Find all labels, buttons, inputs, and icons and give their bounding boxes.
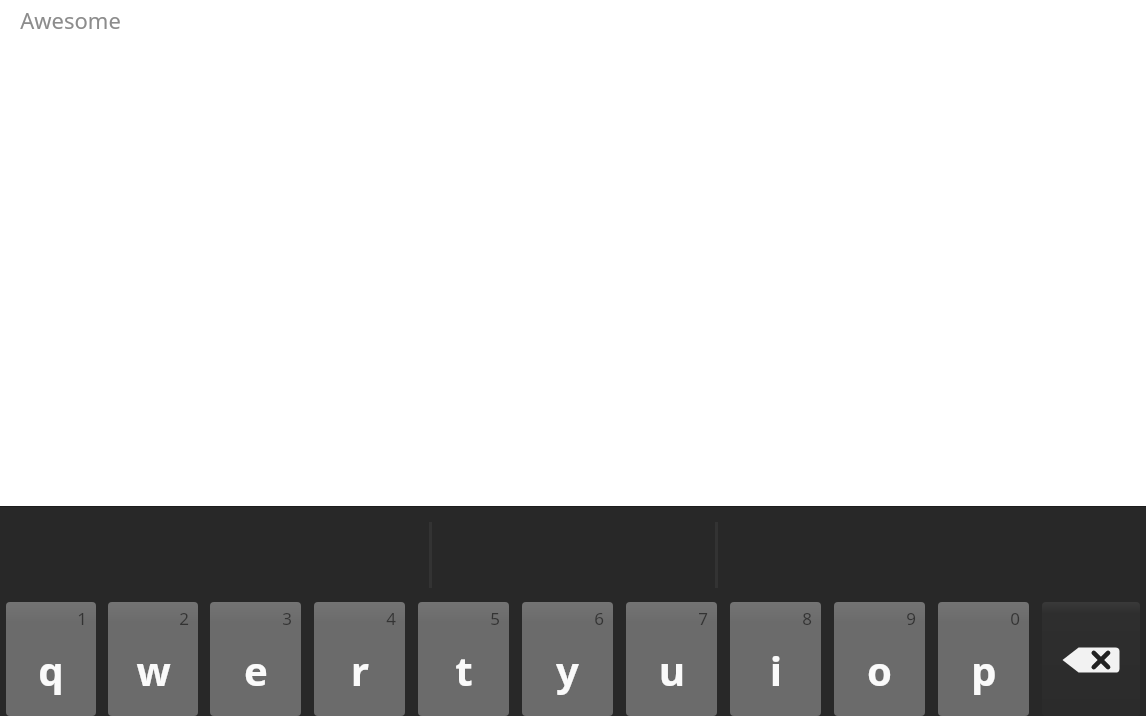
- button[interactable]: 1: [6, 602, 96, 716]
- button[interactable]: 5: [418, 602, 509, 716]
- staticText: r: [351, 643, 369, 697]
- staticText: q: [38, 643, 64, 697]
- staticText: e: [244, 643, 268, 697]
- staticText: 7: [698, 607, 708, 630]
- staticText: 2: [179, 607, 189, 630]
- button[interactable]: 3: [210, 602, 301, 716]
- staticText: w: [136, 643, 171, 697]
- staticText: 4: [386, 607, 396, 630]
- button[interactable]: 2: [108, 602, 198, 716]
- staticText: 5: [490, 607, 500, 630]
- button[interactable]: 0: [938, 602, 1029, 716]
- staticText: t: [455, 643, 473, 697]
- button[interactable]: 7: [626, 602, 717, 716]
- button[interactable]: 4: [314, 602, 405, 716]
- staticText: y: [556, 643, 579, 697]
- staticText: p: [971, 643, 997, 697]
- staticText: 6: [594, 607, 604, 630]
- button[interactable]: Backspace: [1042, 602, 1140, 716]
- button[interactable]: 6: [522, 602, 613, 716]
- staticText: Awesome: [20, 5, 121, 35]
- staticText: o: [867, 643, 892, 697]
- button[interactable]: 9: [834, 602, 925, 716]
- staticText: i: [770, 643, 782, 697]
- staticText: u: [659, 643, 685, 697]
- button[interactable]: 8: [730, 602, 821, 716]
- staticText: 3: [282, 607, 292, 630]
- staticText: 9: [906, 607, 916, 630]
- staticText: 1: [77, 607, 87, 630]
- staticText: 0: [1010, 607, 1020, 630]
- staticText: 8: [802, 607, 812, 630]
